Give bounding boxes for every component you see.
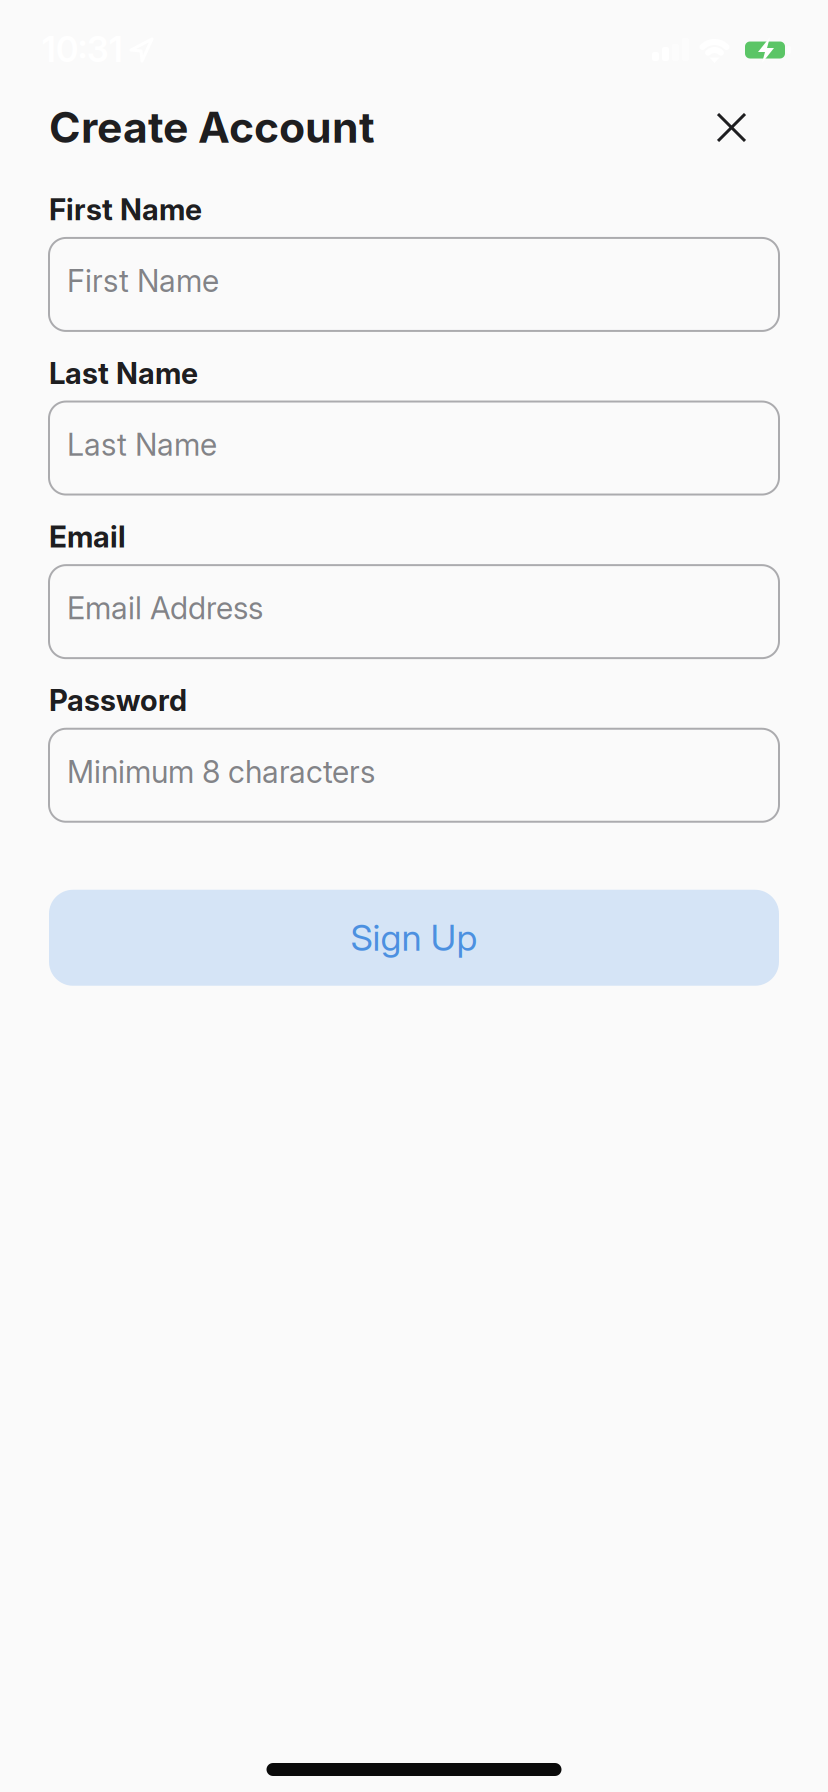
- button[interactable]: Close: [709, 105, 754, 150]
- staticText: Password: [49, 683, 187, 718]
- staticText: Last Name: [49, 356, 198, 390]
- button[interactable]: Sign Up: [49, 890, 779, 986]
- button[interactable]: Last Name: [49, 401, 779, 494]
- staticText: First Name: [67, 263, 219, 299]
- staticText: Create Account: [49, 102, 375, 152]
- button[interactable]: Email Address: [49, 565, 779, 658]
- staticText: First Name: [49, 192, 202, 227]
- button[interactable]: First Name: [49, 238, 779, 331]
- staticText: Sign Up: [350, 916, 477, 959]
- staticText: Email Address: [67, 590, 263, 626]
- staticText: Last Name: [67, 426, 217, 463]
- staticText: Email: [49, 519, 126, 554]
- staticText: Minimum 8 characters: [67, 754, 375, 790]
- button[interactable]: Minimum 8 characters: [49, 729, 779, 822]
